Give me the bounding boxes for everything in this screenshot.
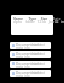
button[interactable] bbox=[11, 15, 53, 35]
staticText: Document name bbox=[16, 52, 42, 56]
staticText: Name Type Size Date More bbox=[13, 16, 64, 21]
staticText: Document name bbox=[16, 62, 42, 66]
staticText: meta info bbox=[16, 74, 30, 78]
button[interactable]: List item bbox=[10, 70, 51, 77]
staticText: detail text bbox=[31, 43, 46, 47]
button[interactable]: List item bbox=[10, 42, 51, 49]
staticText: meta info bbox=[16, 46, 30, 50]
staticText: meta info bbox=[16, 55, 30, 59]
button[interactable]: List item bbox=[10, 61, 51, 68]
staticText: Document name bbox=[16, 43, 42, 47]
staticText: Document name bbox=[16, 71, 42, 75]
button[interactable]: List item bbox=[10, 51, 51, 58]
staticText: detail text bbox=[31, 52, 46, 56]
staticText: meta info bbox=[16, 65, 30, 69]
staticText: detail text bbox=[31, 71, 46, 75]
staticText: detail text bbox=[31, 62, 46, 66]
staticText: alpha folder 12 kb Jan 02 info bbox=[13, 19, 64, 24]
